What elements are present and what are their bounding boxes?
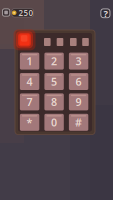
button[interactable]: 9 bbox=[69, 93, 88, 110]
button[interactable]: Help bbox=[101, 9, 110, 18]
button[interactable]: 2 bbox=[44, 53, 64, 70]
button[interactable]: * bbox=[20, 114, 39, 131]
staticText: 8 bbox=[51, 95, 57, 109]
button[interactable]: 5 bbox=[44, 73, 64, 90]
button[interactable]: # bbox=[69, 114, 88, 131]
staticText: 1 bbox=[27, 54, 33, 68]
staticText: 250 bbox=[18, 7, 33, 18]
staticText: 2 bbox=[51, 54, 57, 68]
staticText: 6 bbox=[76, 74, 82, 89]
button[interactable]: 1 bbox=[20, 53, 39, 70]
staticText: 7 bbox=[27, 95, 33, 109]
staticText: 0 bbox=[51, 115, 57, 129]
button[interactable]: 6 bbox=[69, 73, 88, 90]
button[interactable]: 4 bbox=[20, 73, 39, 90]
button[interactable]: 3 bbox=[69, 53, 88, 70]
button[interactable]: Coins: 250 bbox=[12, 9, 33, 17]
button[interactable]: Inventory bbox=[2, 9, 10, 16]
staticText: 9 bbox=[76, 95, 82, 109]
staticText: # bbox=[75, 115, 82, 129]
button[interactable]: 7 bbox=[20, 93, 39, 110]
staticText: ? bbox=[103, 7, 107, 19]
button[interactable]: 0 bbox=[44, 114, 64, 131]
staticText: * bbox=[27, 115, 33, 129]
staticText: 3 bbox=[76, 54, 82, 68]
staticText: 5 bbox=[51, 74, 57, 89]
button[interactable]: 8 bbox=[44, 93, 64, 110]
staticText: 4 bbox=[27, 74, 33, 89]
